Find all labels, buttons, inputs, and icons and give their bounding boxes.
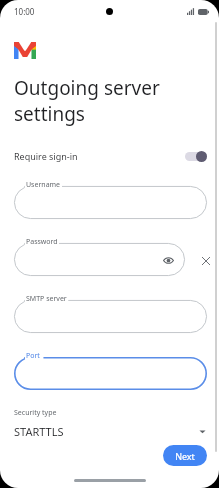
button[interactable]: Require sign-in toggle [185,151,207,162]
staticText: Next [175,450,195,462]
button[interactable]: Security type [0,408,219,439]
button[interactable]: Port [14,351,207,390]
button[interactable]: SMTP server [14,294,207,333]
staticText: Security type [14,408,57,418]
button[interactable]: Next [163,445,207,466]
staticText: 10:00 [14,6,35,17]
staticText: Outgoing server settings [14,75,160,126]
staticText: Port [26,351,40,361]
staticText: Username [26,180,61,190]
button[interactable]: Show password [161,253,175,267]
button[interactable]: Password [14,237,185,276]
staticText: Require sign-in [14,150,78,162]
staticText: Password [26,237,58,247]
staticText: STARTTLS [14,424,64,439]
staticText: SMTP server [26,294,67,304]
button[interactable]: Clear password [199,254,213,268]
button[interactable]: Username [14,180,207,219]
button[interactable]: Require sign-in [0,142,219,170]
